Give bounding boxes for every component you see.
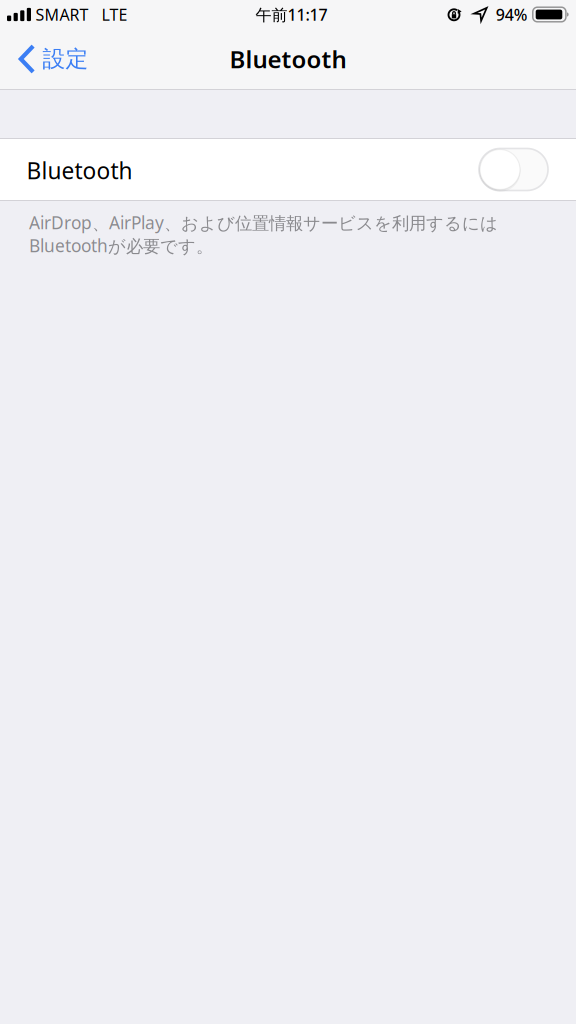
button[interactable]: Bluetooth [479,148,548,190]
staticText: Bluetooth [26,155,132,185]
staticText: AirDrop、AirPlay、および位置情報サービスを利用するには Bluet… [29,211,498,257]
staticText: 午前11:17 [255,4,327,25]
button[interactable]: Bluetooth [0,139,576,200]
staticText: 94% [496,4,528,25]
staticText: 設定 [42,45,88,73]
button[interactable]: 設定 [0,29,102,89]
staticText: Bluetooth [229,43,346,75]
staticText: SMART [35,4,88,25]
staticText: LTE [101,4,127,25]
